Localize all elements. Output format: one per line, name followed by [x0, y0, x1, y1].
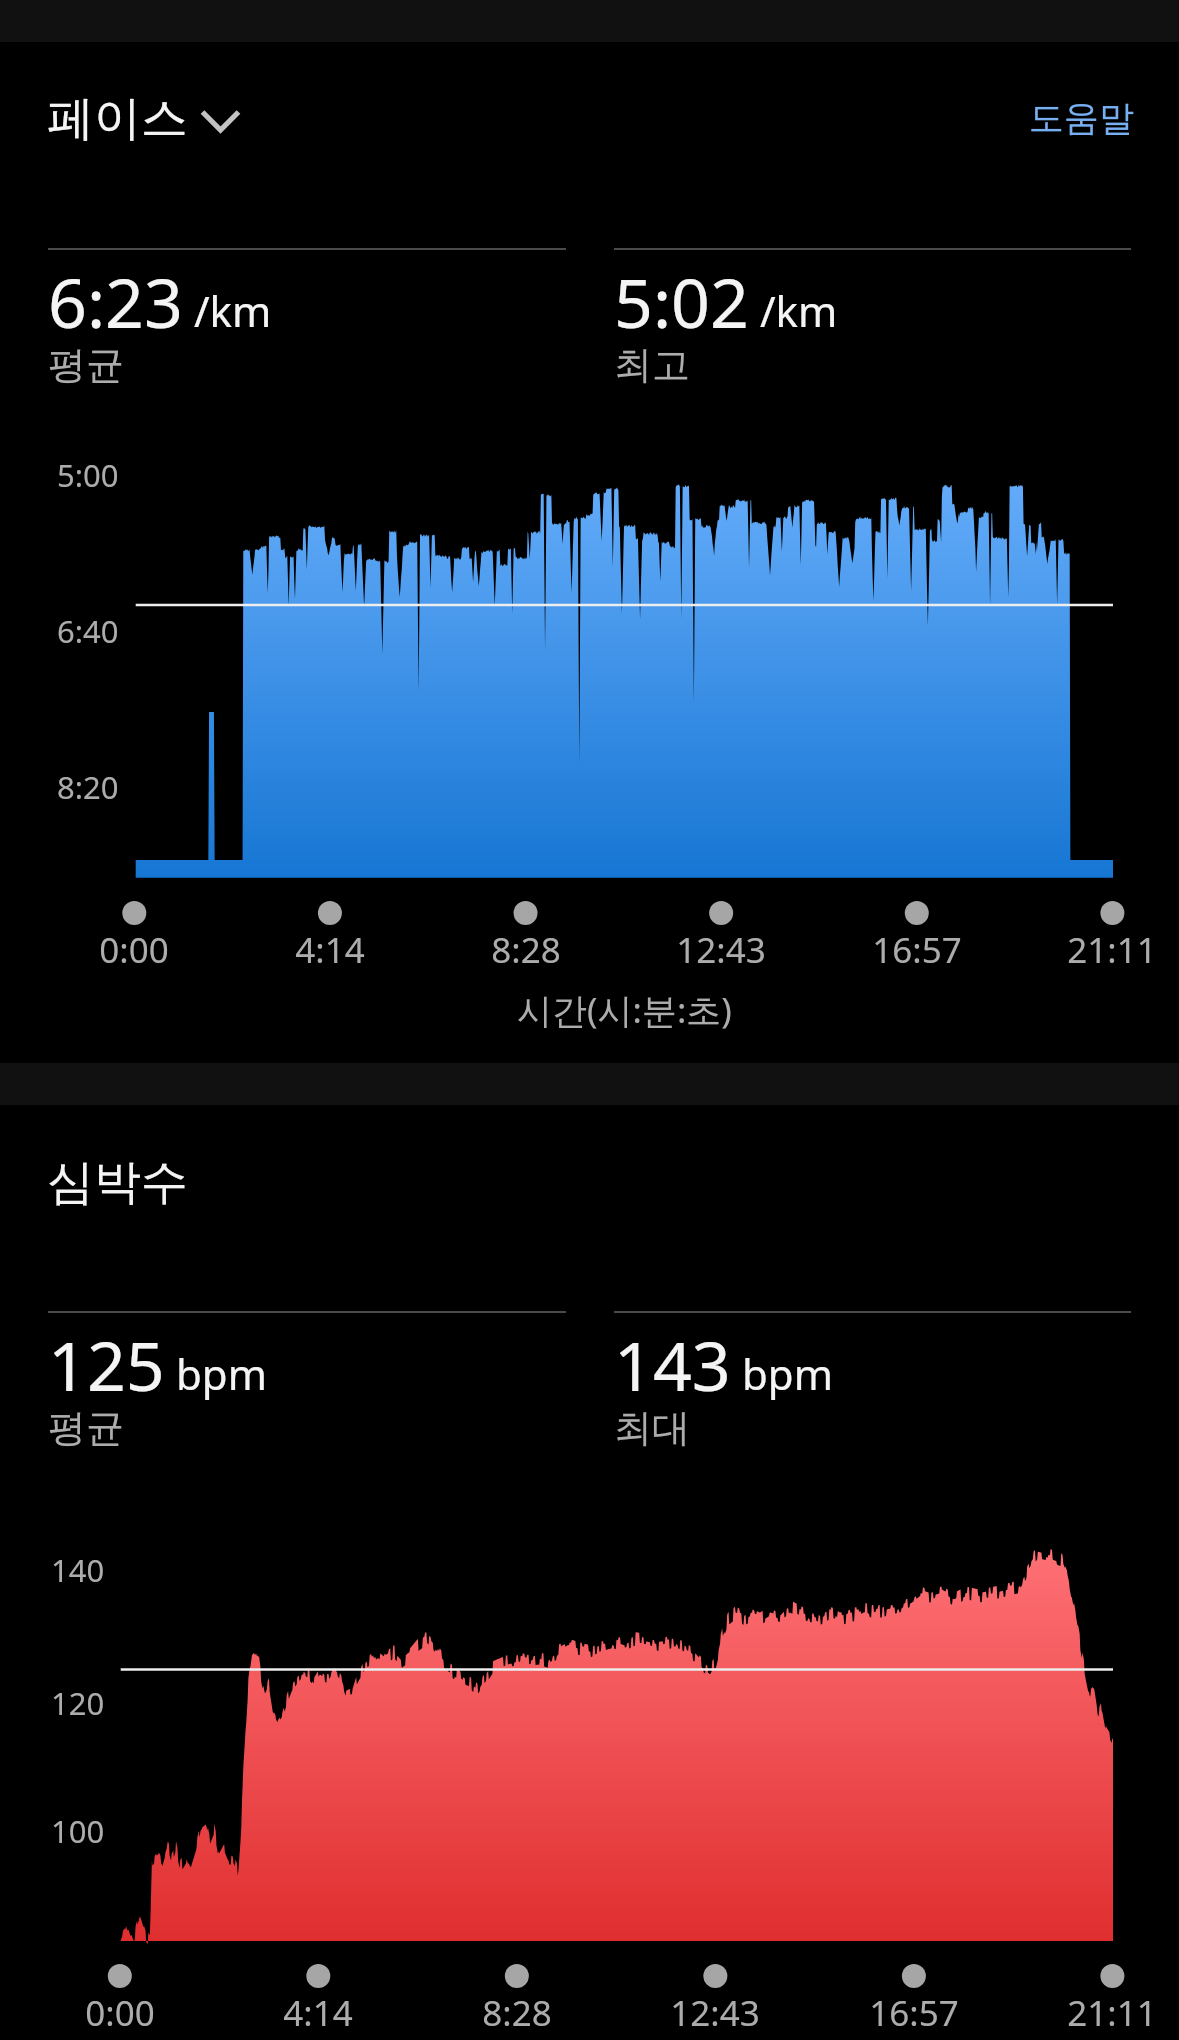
staticText: 평균 — [48, 341, 124, 389]
button[interactable]: 6:23 — [48, 255, 566, 389]
staticText: 5:00 — [57, 454, 119, 496]
button[interactable]: 심박수 — [47, 1153, 188, 1212]
staticText: 21:11 — [1067, 1989, 1157, 2037]
staticText: 도움말 — [1029, 96, 1134, 140]
staticText: 16:57 — [869, 1989, 959, 2037]
staticText: bpm — [742, 1345, 833, 1402]
staticText: 120 — [51, 1682, 105, 1724]
staticText: bpm — [176, 1345, 267, 1402]
staticText: 16:57 — [872, 926, 962, 974]
staticText: 5:02 — [614, 255, 749, 348]
staticText: 심박수 — [47, 1153, 188, 1212]
staticText: 0:00 — [99, 926, 169, 974]
staticText: 140 — [51, 1549, 105, 1591]
staticText: 12:43 — [670, 1989, 760, 2037]
other: Change metric — [200, 97, 242, 141]
staticText: 최대 — [614, 1404, 690, 1452]
staticText: 8:28 — [482, 1989, 552, 2037]
staticText: /km — [760, 282, 838, 339]
staticText: 최고 — [614, 341, 690, 389]
staticText: 시간(시:분:초) — [517, 986, 732, 1034]
staticText: 6:40 — [57, 610, 119, 652]
staticText: 6:23 — [48, 255, 183, 348]
staticText: 8:28 — [491, 926, 561, 974]
staticText: 평균 — [48, 1404, 124, 1452]
button[interactable]: 143 — [614, 1318, 1132, 1452]
button[interactable]: 페이스 — [47, 89, 242, 148]
staticText: 0:00 — [85, 1989, 155, 2037]
staticText: 125 — [48, 1318, 165, 1411]
staticText: 12:43 — [676, 926, 766, 974]
staticText: 21:11 — [1067, 926, 1157, 974]
button[interactable]: 5:02 — [614, 255, 1132, 389]
staticText: 페이스 — [47, 89, 188, 148]
staticText: 4:14 — [295, 926, 365, 974]
button[interactable]: 도움말 — [1029, 96, 1134, 140]
staticText: 100 — [51, 1810, 105, 1852]
staticText: 143 — [614, 1318, 731, 1411]
button[interactable]: 125 — [48, 1318, 566, 1452]
staticText: 4:14 — [283, 1989, 353, 2037]
staticText: 8:20 — [57, 766, 119, 808]
staticText: /km — [194, 282, 272, 339]
